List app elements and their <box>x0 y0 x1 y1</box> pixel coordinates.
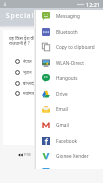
staticText: भूटान <box>23 70 32 75</box>
button[interactable]: Copy to clipboard <box>36 39 103 55</box>
staticText: Hangouts <box>56 75 78 81</box>
staticText: Messaging <box>56 13 80 19</box>
button[interactable]: बांग्लादेश <box>3 81 36 86</box>
button[interactable]: Facebook <box>36 133 103 149</box>
button[interactable]: Drive <box>36 86 103 102</box>
staticText: यह किस देश की राजधानी है ? <box>9 35 36 46</box>
button[interactable]: Gionee Xender <box>36 148 103 164</box>
button[interactable] <box>36 164 103 169</box>
button[interactable]: PRE <box>17 151 33 158</box>
button[interactable]: मयांमार <box>3 91 36 96</box>
staticText: Facebook <box>56 138 78 144</box>
staticText: Special Handwriting <box>6 11 86 20</box>
button[interactable]: Messaging <box>36 10 103 24</box>
staticText: Gmail <box>56 122 69 128</box>
staticText: नेपाल <box>23 59 32 64</box>
staticText: PRE <box>24 152 32 157</box>
staticText: 12:21 <box>86 1 101 8</box>
button[interactable]: Bluetooth <box>36 24 103 40</box>
staticText: बांग्लादेश <box>23 81 36 86</box>
button[interactable]: Email <box>36 101 103 117</box>
staticText: Drive <box>56 91 68 97</box>
button[interactable]: नेपाल <box>3 59 36 64</box>
staticText: WLAN-Direct <box>56 60 84 66</box>
staticText: मयांमार <box>23 91 35 96</box>
staticText: Email <box>56 106 69 112</box>
button[interactable]: Gmail <box>36 117 103 133</box>
button[interactable]: Hangouts <box>36 70 103 86</box>
staticText: Copy to clipboard <box>56 44 95 50</box>
button[interactable]: भूटान <box>3 70 36 75</box>
button[interactable]: WLAN-Direct <box>36 55 103 71</box>
staticText: Bluetooth <box>56 29 78 35</box>
staticText: Gionee Xender <box>56 153 89 159</box>
